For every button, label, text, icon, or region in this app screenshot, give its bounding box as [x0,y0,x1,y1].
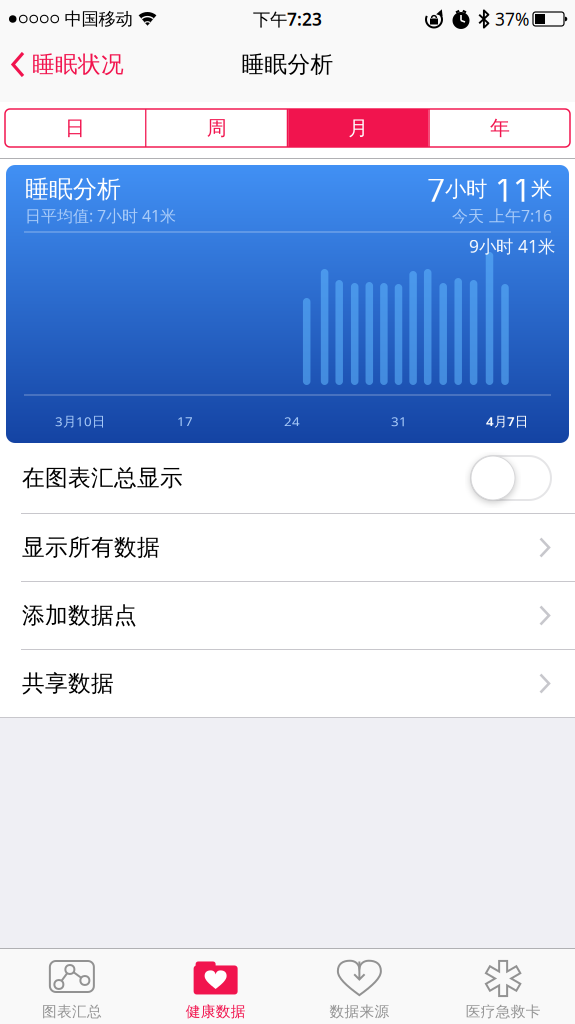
button[interactable]: 在图表汇总显示 [0,443,575,513]
staticText: 24 [284,412,300,430]
button[interactable]: 周 [147,109,287,147]
staticText: 11 [487,168,531,210]
staticText: 睡眠分析 [241,51,333,78]
button[interactable]: 月 [288,109,428,147]
button[interactable]: 图表汇总 [0,949,144,1024]
button[interactable]: 年 [430,109,570,147]
staticText: 下午7:23 [253,7,322,30]
staticText: 周 [207,116,227,140]
staticText: 睡眠状况 [32,51,124,78]
staticText: 今天 上午7:16 [452,205,552,226]
staticText: 医疗急救卡 [466,1002,541,1020]
staticText: 日平均值: 7小时 41米 [25,205,176,226]
staticText: 31 [391,412,407,430]
staticText: 月 [348,116,368,140]
staticText: 共享数据 [22,670,114,697]
button[interactable]: 健康数据 [144,949,288,1024]
staticText: 在图表汇总显示 [22,464,183,492]
button[interactable]: 显示所有数据 [0,514,575,581]
staticText: 7 [427,168,445,210]
staticText: 日 [65,116,85,140]
staticText: 17 [177,412,193,430]
staticText: 年 [490,116,510,140]
staticText: 9小时 41米 [469,234,555,257]
staticText: 37% [495,7,529,30]
staticText: 3月10日 [55,412,105,430]
staticText: 健康数据 [186,1002,246,1020]
staticText: 米 [531,176,552,202]
staticText: 中国移动 [64,8,132,30]
staticText: 4月7日 [486,412,528,430]
staticText: 添加数据点 [22,602,137,629]
staticText: 小时 [445,176,487,202]
button[interactable]: 数据来源 [287,949,431,1024]
staticText: 数据来源 [329,1002,389,1020]
staticText: 睡眠分析 [25,174,121,204]
button[interactable]: 医疗急救卡 [431,949,575,1024]
staticText: 图表汇总 [42,1002,102,1020]
button[interactable]: 返回睡眠状况 [0,51,124,78]
button[interactable]: 添加数据点 [0,582,575,649]
button[interactable]: 共享数据 [0,650,575,717]
button[interactable]: 日 [5,109,145,147]
staticText: 显示所有数据 [22,534,160,561]
